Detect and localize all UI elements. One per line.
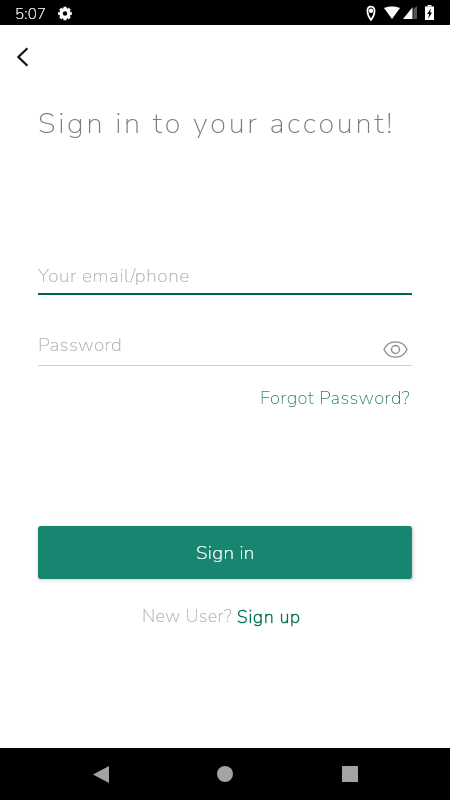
button[interactable]: Show password xyxy=(382,336,409,363)
button[interactable]: Sign in xyxy=(38,526,412,579)
button[interactable]: Back xyxy=(77,750,125,798)
button[interactable]: Sign up xyxy=(237,605,301,629)
staticText: Your email/phone xyxy=(38,263,190,289)
staticText: Sign in to your account! xyxy=(38,104,396,144)
staticText: Forgot Password? xyxy=(260,385,411,410)
button[interactable]: Forgot Password? xyxy=(260,385,411,410)
button[interactable]: Back xyxy=(0,34,45,79)
staticText: Sign up xyxy=(237,605,301,629)
staticText: New User? xyxy=(142,604,237,629)
staticText: 5:07 xyxy=(15,4,47,24)
staticText: Sign in xyxy=(196,540,255,566)
staticText: Password xyxy=(38,332,123,358)
button[interactable]: Home xyxy=(201,750,249,798)
button[interactable]: Recents xyxy=(326,750,374,798)
